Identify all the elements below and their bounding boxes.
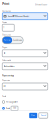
staticText: Print bbox=[31, 114, 35, 116]
button[interactable]: A4 bbox=[2, 83, 48, 90]
button[interactable]: 1 bbox=[2, 24, 14, 31]
staticText: 1 bbox=[4, 27, 5, 29]
staticText: 2 sheets of paper bbox=[35, 4, 48, 6]
button[interactable]: Landscape bbox=[12, 37, 23, 44]
staticText: Canon MF450 series (Ready) bbox=[7, 15, 29, 17]
staticText: Fit to page width bbox=[6, 101, 18, 103]
staticText: Portrait bbox=[4, 39, 11, 41]
staticText: Colour mode bbox=[2, 60, 11, 61]
button[interactable]: All bbox=[2, 50, 48, 57]
button[interactable]: Portrait bbox=[2, 37, 12, 44]
staticText: Paper size bbox=[2, 80, 10, 81]
staticText: Pages bbox=[2, 47, 7, 48]
staticText: Destination bbox=[2, 10, 11, 12]
staticText: 100 bbox=[13, 107, 16, 109]
button[interactable]: Black and white bbox=[2, 63, 48, 70]
staticText: Landscape bbox=[13, 39, 22, 41]
staticText: A4 bbox=[4, 85, 6, 87]
staticText: Copies bbox=[2, 22, 7, 23]
button[interactable]: Scale bbox=[2, 106, 48, 111]
staticText: Scale bbox=[2, 96, 6, 97]
button[interactable]: Print bbox=[29, 113, 37, 118]
staticText: Black and white bbox=[4, 65, 15, 67]
button[interactable]: Canon MF450 series (Ready) bbox=[2, 13, 48, 20]
button[interactable]: Cancel bbox=[39, 113, 48, 118]
staticText: Scale bbox=[6, 107, 10, 109]
staticText: Orientation bbox=[2, 34, 11, 36]
button[interactable]: Fit to page width bbox=[2, 100, 48, 104]
staticText: Paper settings bbox=[2, 74, 14, 77]
staticText: Print bbox=[2, 2, 9, 6]
staticText: All bbox=[4, 52, 5, 54]
staticText: Cancel bbox=[41, 114, 46, 116]
